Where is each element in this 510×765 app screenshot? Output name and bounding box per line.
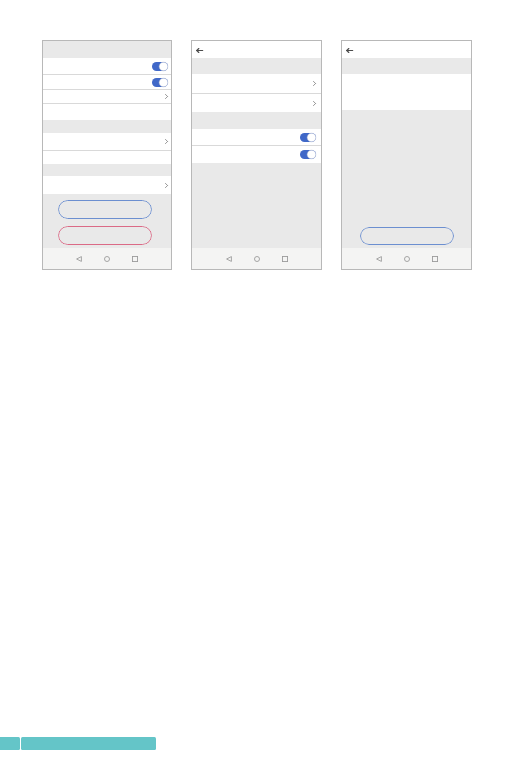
button[interactable]: Home	[400, 252, 414, 266]
button[interactable]: Back	[222, 252, 236, 266]
button[interactable]: Toggle setting	[43, 58, 171, 74]
button[interactable]: Toggle setting	[192, 129, 321, 145]
button[interactable]: Open	[43, 133, 171, 150]
button[interactable]: Open	[43, 176, 171, 194]
button[interactable]: Toggle setting	[300, 133, 316, 142]
other: Open	[313, 81, 316, 86]
button[interactable]: Open	[43, 90, 171, 103]
button[interactable]: Open	[192, 94, 321, 112]
button[interactable]: Recent apps	[428, 252, 442, 266]
other: Open	[165, 94, 168, 99]
button[interactable]: Open	[192, 74, 321, 93]
button[interactable]: Back	[72, 252, 86, 266]
button[interactable]: Home	[100, 252, 114, 266]
button[interactable]	[360, 227, 454, 245]
other: Open	[165, 139, 168, 144]
button[interactable]	[58, 226, 152, 245]
button[interactable]: Navigate back	[342, 43, 356, 57]
button[interactable]	[58, 200, 152, 219]
button[interactable]: Toggle setting	[192, 146, 321, 163]
other: Open	[165, 183, 168, 188]
button[interactable]: Toggle setting	[300, 150, 316, 159]
other: Open	[313, 101, 316, 106]
button[interactable]: Toggle setting	[152, 62, 168, 71]
button[interactable]: Navigate back	[192, 43, 206, 57]
button[interactable]: Toggle setting	[43, 75, 171, 89]
button[interactable]: Home	[250, 252, 264, 266]
button[interactable]: Recent apps	[128, 252, 142, 266]
button[interactable]: Toggle setting	[152, 78, 168, 87]
button[interactable]: Recent apps	[278, 252, 292, 266]
button[interactable]: Back	[372, 252, 386, 266]
